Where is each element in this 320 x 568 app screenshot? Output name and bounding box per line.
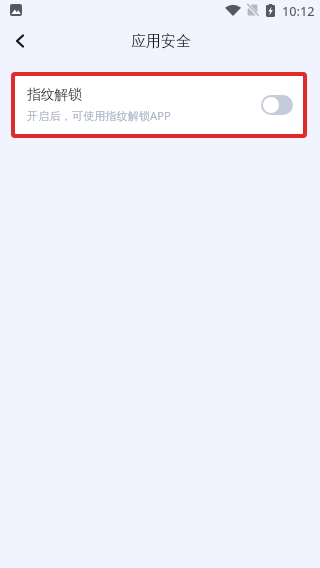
staticText: 应用安全	[131, 32, 191, 51]
staticText: 指纹解锁	[27, 86, 82, 103]
button[interactable]: Fingerprint unlock toggle	[261, 95, 293, 115]
button[interactable]: 指纹解锁	[15, 76, 303, 134]
button[interactable]: Back	[1, 22, 39, 60]
staticText: 10:12	[282, 2, 315, 19]
staticText: 开启后，可使用指纹解锁APP	[27, 108, 171, 123]
